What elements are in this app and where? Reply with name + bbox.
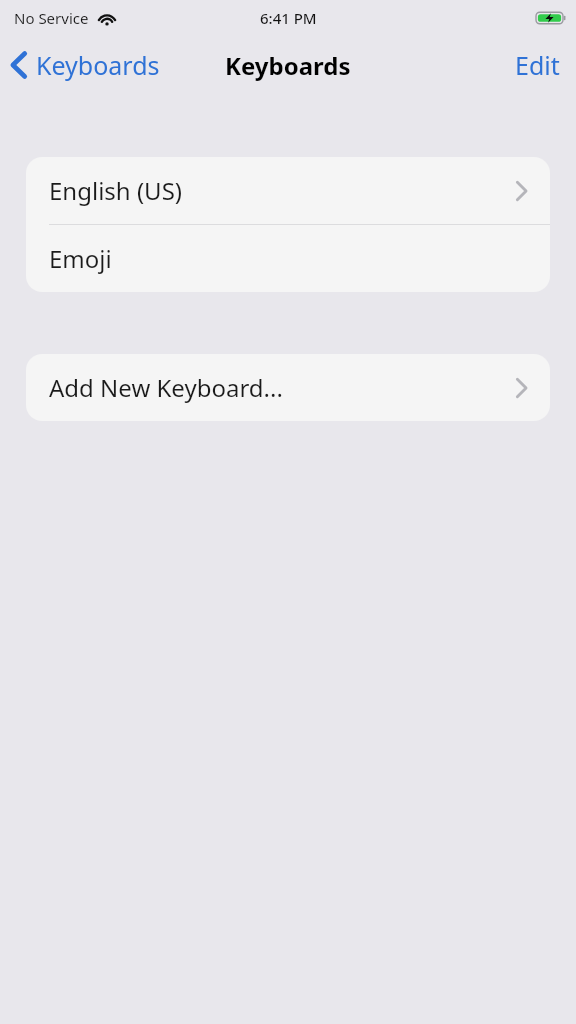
staticText: English (US)	[49, 174, 183, 207]
staticText: Keyboards	[225, 49, 351, 82]
staticText: Add New Keyboard...	[49, 371, 283, 404]
button[interactable]: Emoji	[26, 225, 550, 292]
button[interactable]: Add New Keyboard...	[26, 354, 550, 421]
button[interactable]: English (US)	[26, 157, 550, 224]
staticText: Edit	[515, 48, 560, 82]
staticText: Emoji	[49, 242, 112, 275]
staticText: Keyboards	[36, 48, 160, 82]
staticText: 6:41 PM	[260, 8, 317, 28]
staticText: No Service	[14, 8, 89, 28]
button[interactable]: Keyboards	[0, 42, 168, 88]
button[interactable]: Edit	[499, 40, 576, 90]
